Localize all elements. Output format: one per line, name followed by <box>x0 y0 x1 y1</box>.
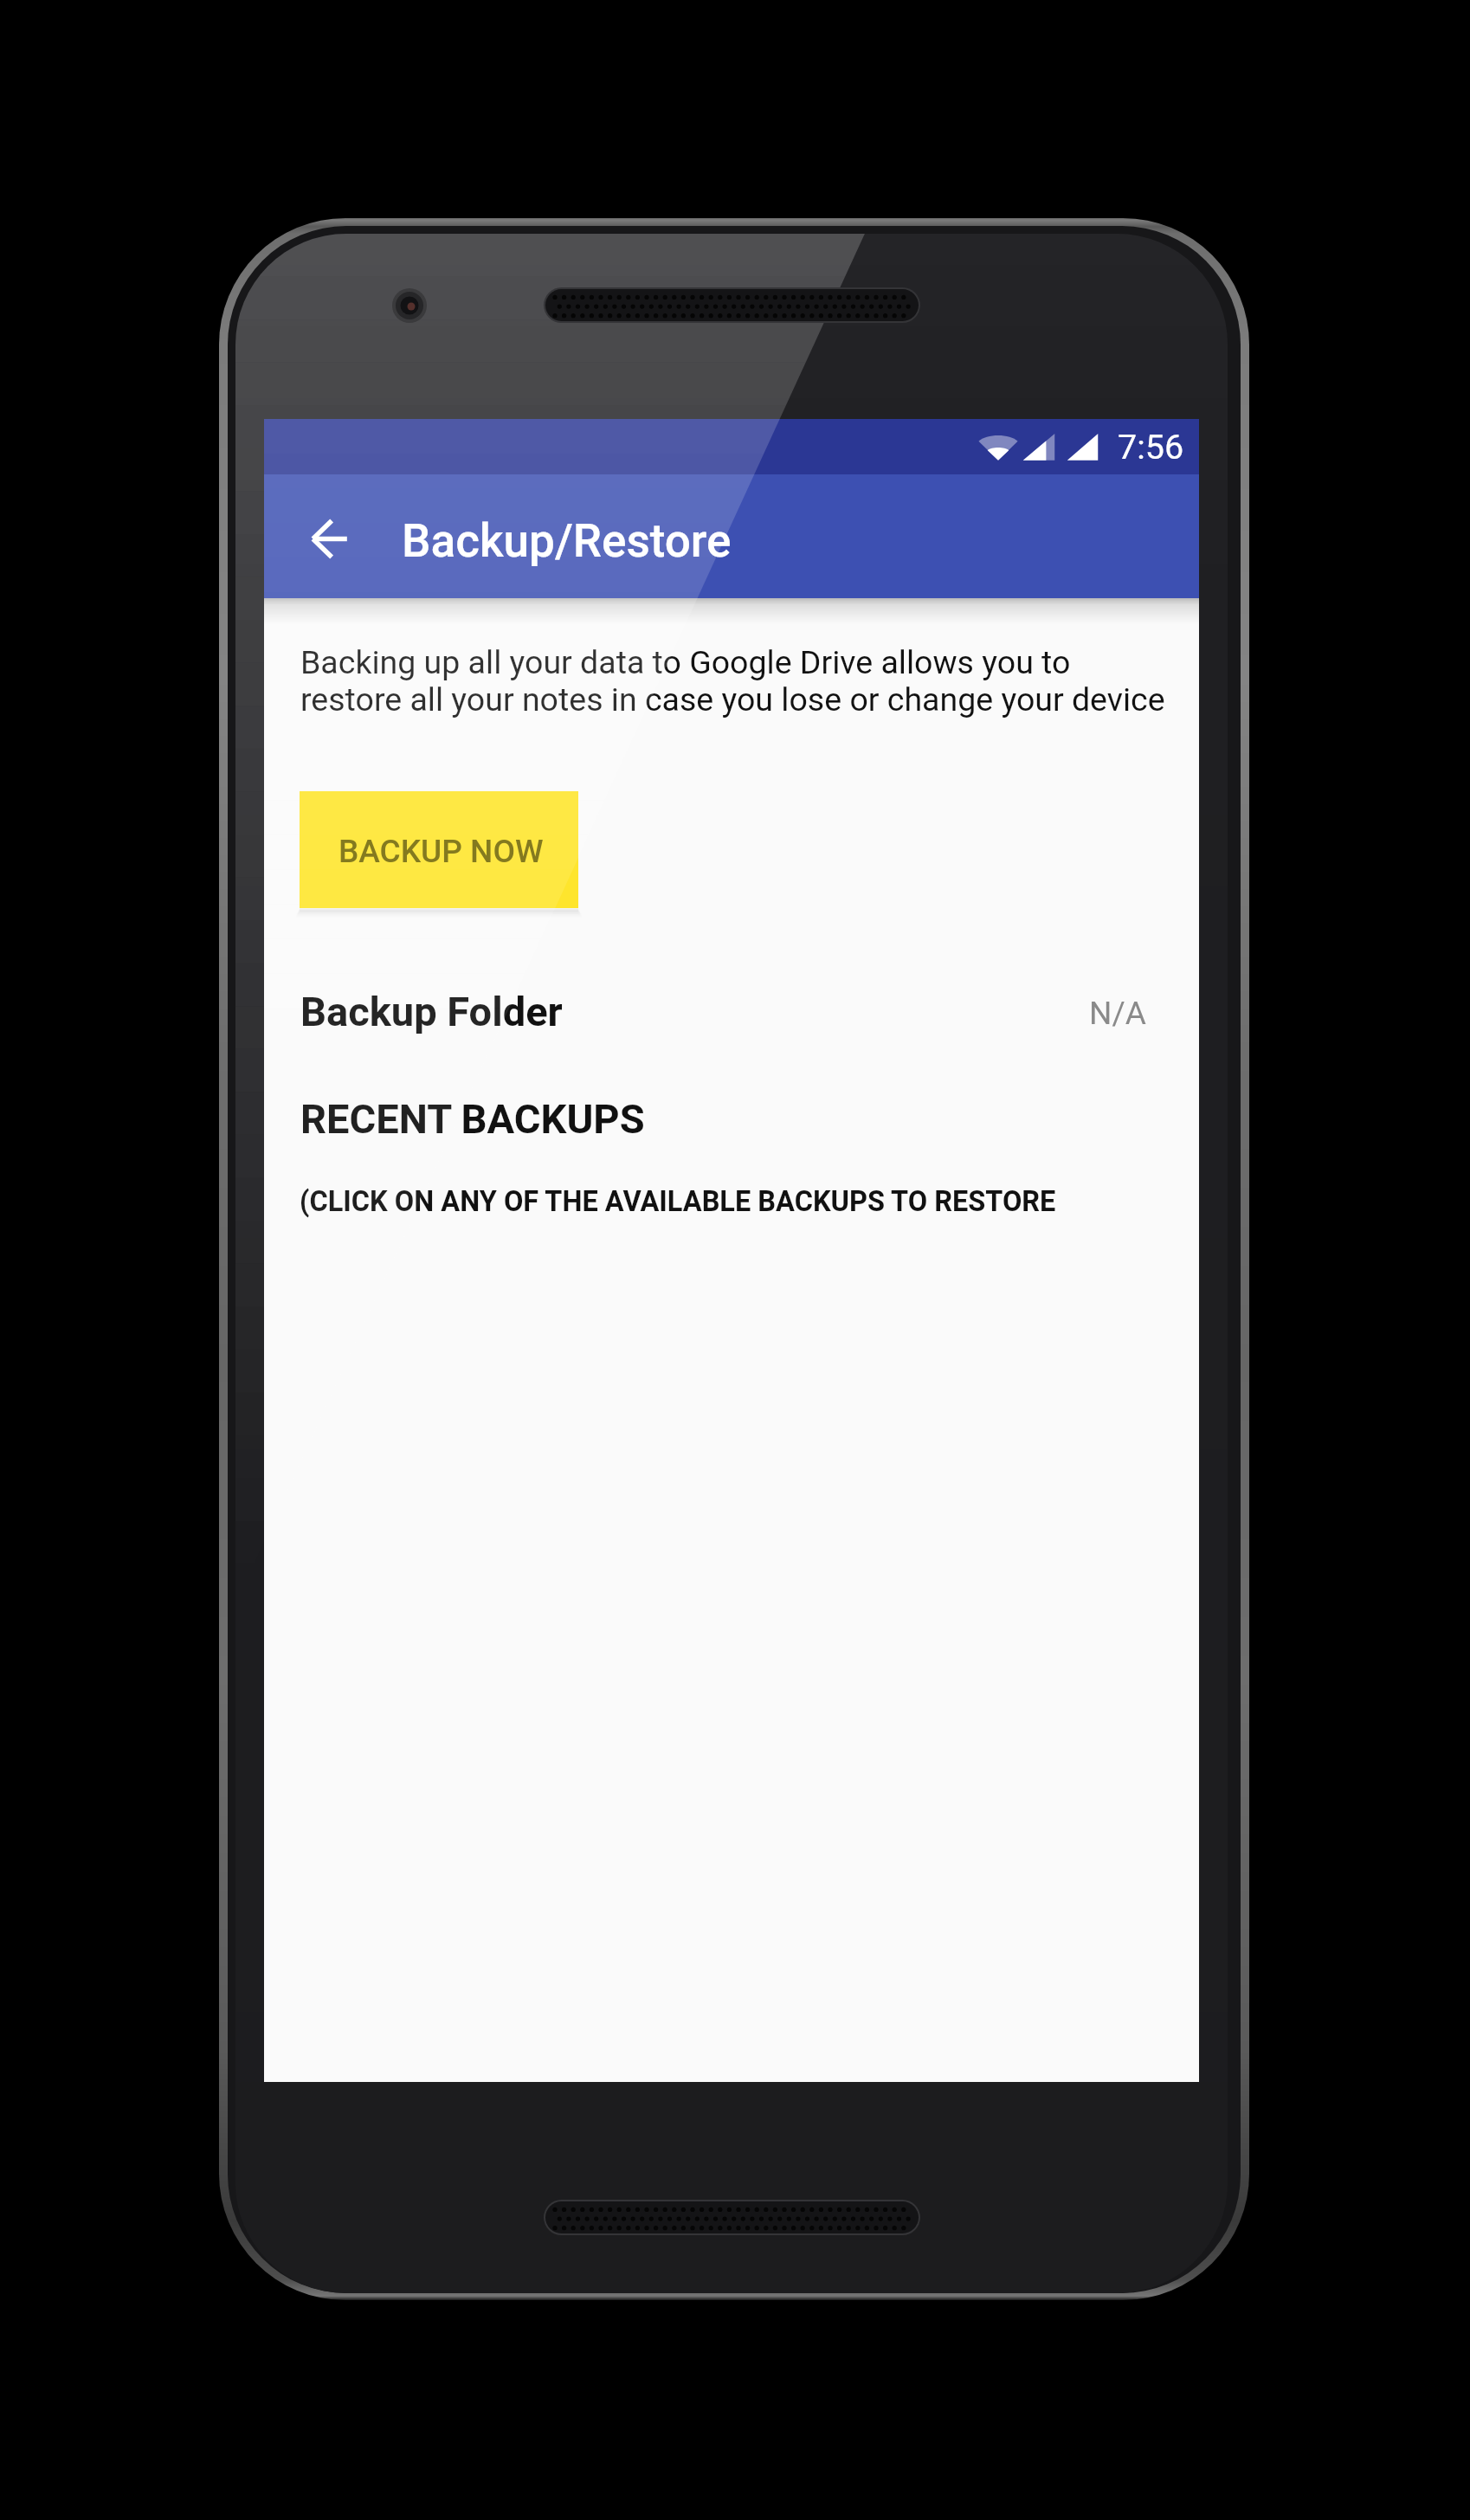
staticText: RECENT BACKUPS <box>300 1095 645 1143</box>
staticText: Backup Folder <box>300 988 563 1035</box>
button[interactable]: BACKUP NOW <box>300 791 578 908</box>
staticText: Backing up all your data to Google Drive… <box>300 643 1166 719</box>
staticText: BACKUP NOW <box>338 833 544 870</box>
button[interactable]: Navigate up <box>283 493 373 583</box>
staticText: (CLICK ON ANY OF THE AVAILABLE BACKUPS T… <box>300 1185 1056 1218</box>
staticText: 7:56 <box>1118 427 1184 467</box>
staticText: N/A <box>1089 995 1146 1032</box>
button[interactable]: Backup Folder <box>264 964 1199 1050</box>
staticText: Backup/Restore <box>402 514 732 568</box>
